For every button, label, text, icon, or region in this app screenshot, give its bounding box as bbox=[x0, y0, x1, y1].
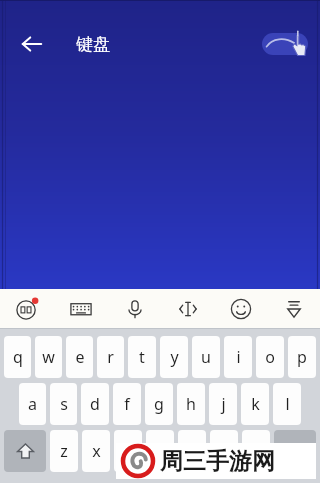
staticText: r bbox=[107, 346, 114, 368]
button[interactable]: f bbox=[113, 383, 141, 425]
staticText: b bbox=[187, 440, 197, 462]
button[interactable]: Voice input bbox=[108, 289, 161, 328]
button[interactable]: z bbox=[50, 430, 78, 472]
button[interactable]: Backspace bbox=[274, 430, 316, 472]
button[interactable]: Shift bbox=[4, 430, 46, 472]
button[interactable]: o bbox=[256, 336, 284, 378]
staticText: k bbox=[251, 393, 260, 415]
button[interactable]: t bbox=[128, 336, 156, 378]
button[interactable]: s bbox=[50, 383, 77, 425]
button[interactable]: u bbox=[192, 336, 220, 378]
button[interactable]: x bbox=[82, 430, 110, 472]
button[interactable]: n bbox=[210, 430, 238, 472]
staticText: c bbox=[124, 440, 132, 462]
staticText: 周三手游网 bbox=[160, 447, 275, 476]
button[interactable]: Emoji bbox=[214, 289, 267, 328]
button[interactable]: q bbox=[4, 336, 31, 378]
staticText: a bbox=[28, 393, 37, 415]
staticText: f bbox=[124, 393, 130, 415]
button[interactable]: h bbox=[177, 383, 205, 425]
staticText: q bbox=[13, 346, 23, 368]
button[interactable]: j bbox=[209, 383, 237, 425]
staticText: l bbox=[285, 393, 290, 415]
button[interactable]: b bbox=[178, 430, 206, 472]
staticText: h bbox=[186, 393, 196, 415]
button[interactable]: r bbox=[97, 336, 124, 378]
staticText: y bbox=[170, 346, 179, 368]
button[interactable]: d bbox=[81, 383, 109, 425]
button[interactable]: i bbox=[224, 336, 252, 378]
button[interactable]: c bbox=[114, 430, 142, 472]
staticText: i bbox=[236, 346, 241, 368]
staticText: n bbox=[219, 440, 229, 462]
button[interactable]: v bbox=[146, 430, 174, 472]
staticText: v bbox=[156, 440, 165, 462]
staticText: u bbox=[201, 346, 211, 368]
staticText: z bbox=[60, 440, 68, 462]
button[interactable]: Toggle bbox=[262, 33, 308, 55]
button[interactable]: Hide keyboard bbox=[267, 289, 320, 328]
staticText: j bbox=[221, 393, 226, 415]
button[interactable]: g bbox=[145, 383, 173, 425]
staticText: e bbox=[75, 346, 85, 368]
staticText: x bbox=[92, 440, 101, 462]
staticText: s bbox=[60, 393, 68, 415]
button[interactable]: y bbox=[160, 336, 188, 378]
staticText: p bbox=[297, 346, 307, 368]
staticText: 键盘 bbox=[76, 34, 110, 55]
button[interactable]: a bbox=[19, 383, 46, 425]
button[interactable]: w bbox=[35, 336, 62, 378]
button[interactable]: k bbox=[241, 383, 269, 425]
button[interactable]: Back bbox=[10, 22, 54, 66]
staticText: w bbox=[42, 346, 55, 368]
button[interactable]: m bbox=[242, 430, 270, 472]
button[interactable]: e bbox=[66, 336, 93, 378]
button[interactable]: p bbox=[288, 336, 316, 378]
staticText: o bbox=[265, 346, 275, 368]
button[interactable]: Keyboard layout bbox=[54, 289, 108, 328]
staticText: t bbox=[139, 346, 145, 368]
button[interactable]: Input method bbox=[0, 289, 54, 328]
button[interactable]: Cursor move bbox=[161, 289, 214, 328]
staticText: g bbox=[154, 393, 164, 415]
staticText: m bbox=[249, 440, 264, 462]
staticText: d bbox=[90, 393, 100, 415]
button[interactable]: l bbox=[273, 383, 301, 425]
